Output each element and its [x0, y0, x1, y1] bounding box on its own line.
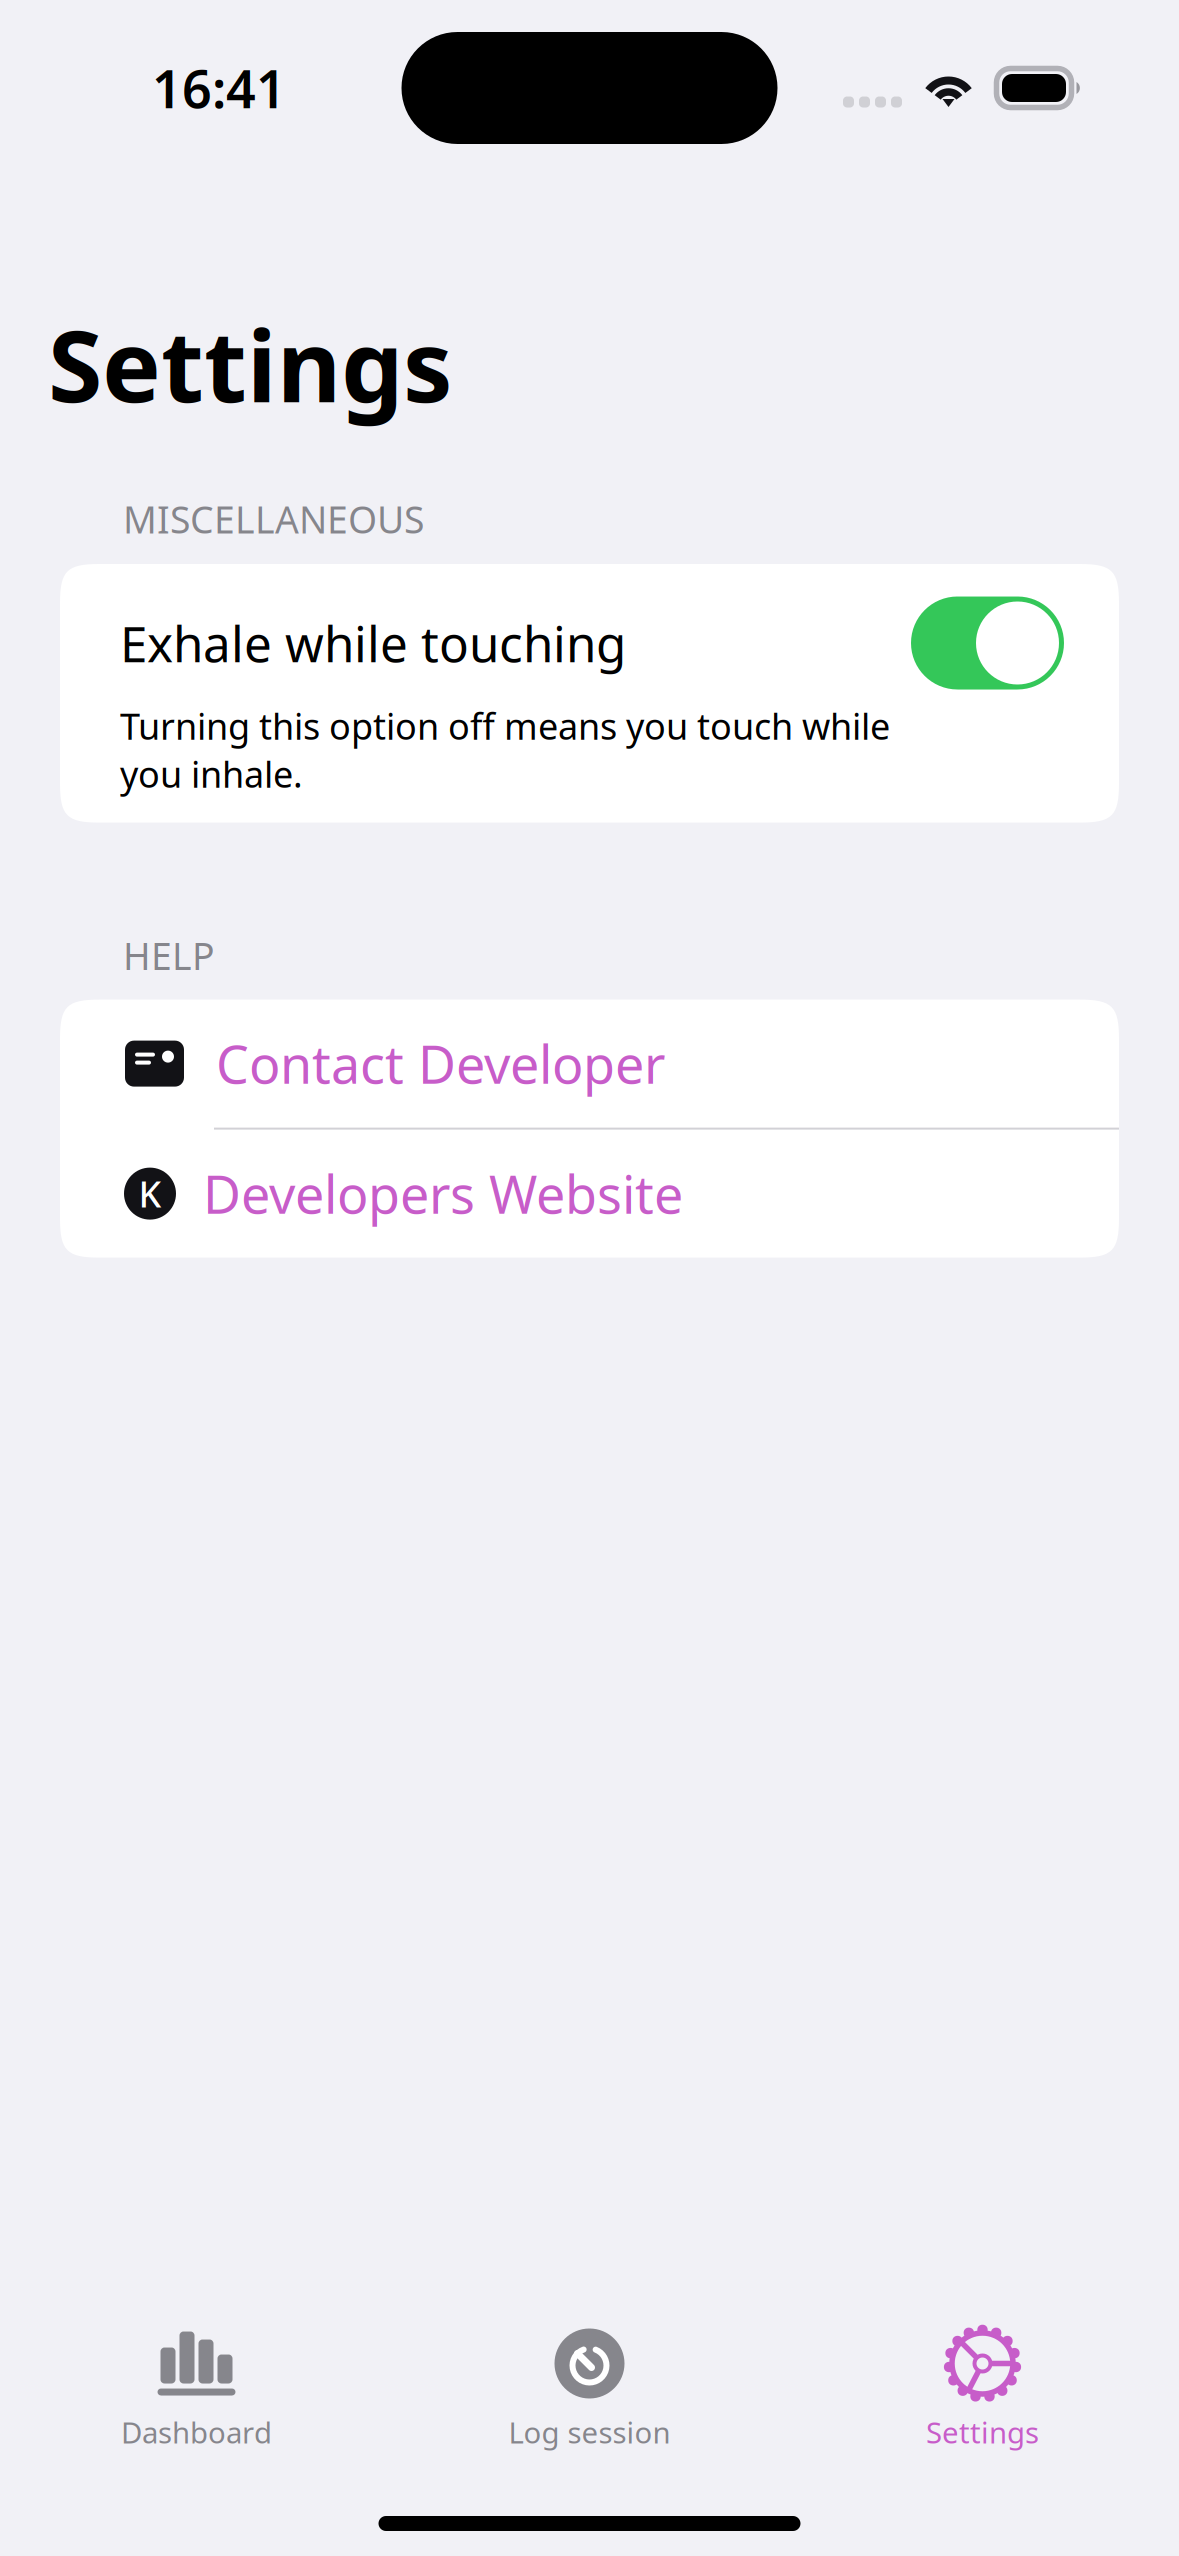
button[interactable]: Log session: [393, 2331, 786, 2447]
staticText: K: [138, 1170, 161, 1217]
staticText: HELP: [123, 931, 215, 980]
staticText: MISCELLANEOUS: [123, 494, 424, 544]
staticText: Settings: [926, 2412, 1039, 2451]
staticText: Turning this option off means you touch …: [120, 702, 890, 798]
button[interactable]: Settings: [786, 2331, 1179, 2447]
staticText: Exhale while touching: [120, 610, 626, 676]
staticText: 16:41: [152, 53, 286, 123]
staticText: Settings: [48, 298, 453, 429]
button[interactable]: Contact Developer: [60, 1000, 1119, 1128]
button[interactable]: Exhale while touching: [911, 596, 1064, 689]
button[interactable]: K: [60, 1130, 1119, 1258]
staticText: Dashboard: [121, 2412, 272, 2451]
staticText: Developers Website: [203, 1159, 683, 1228]
staticText: Contact Developer: [216, 1029, 665, 1098]
staticText: Log session: [508, 2412, 670, 2451]
button[interactable]: Dashboard: [0, 2331, 393, 2447]
